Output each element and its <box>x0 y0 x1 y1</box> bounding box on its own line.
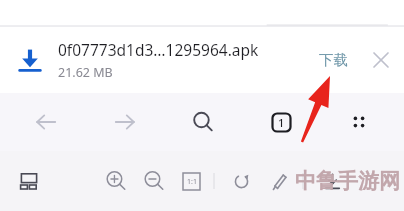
button[interactable]: Zoom in <box>102 167 130 195</box>
button[interactable]: Forward <box>85 93 164 151</box>
button[interactable]: Back <box>6 93 85 151</box>
button[interactable]: Search <box>164 93 242 151</box>
button[interactable]: Rotate <box>227 167 255 195</box>
staticText: 0f07773d1d3…1295964.apk <box>58 39 259 60</box>
button[interactable]: Download file <box>12 42 48 78</box>
button[interactable]: 下载 <box>311 45 356 75</box>
button[interactable]: Dismiss <box>366 45 396 75</box>
button[interactable]: Tabs <box>242 93 320 151</box>
button[interactable]: Menu <box>320 93 398 151</box>
staticText: 下载 <box>319 51 348 69</box>
staticText: 1 <box>278 115 285 130</box>
staticText: 21.62 MB <box>58 64 113 81</box>
button[interactable]: Desktop site <box>14 166 44 196</box>
staticText: 中鲁手游网 <box>295 168 400 194</box>
button[interactable]: Zoom out <box>140 167 168 195</box>
button[interactable]: Actual size <box>178 168 204 194</box>
staticText: 1:1 <box>187 177 197 187</box>
button[interactable]: Annotate <box>265 167 293 195</box>
button[interactable]: Save <box>318 167 346 195</box>
